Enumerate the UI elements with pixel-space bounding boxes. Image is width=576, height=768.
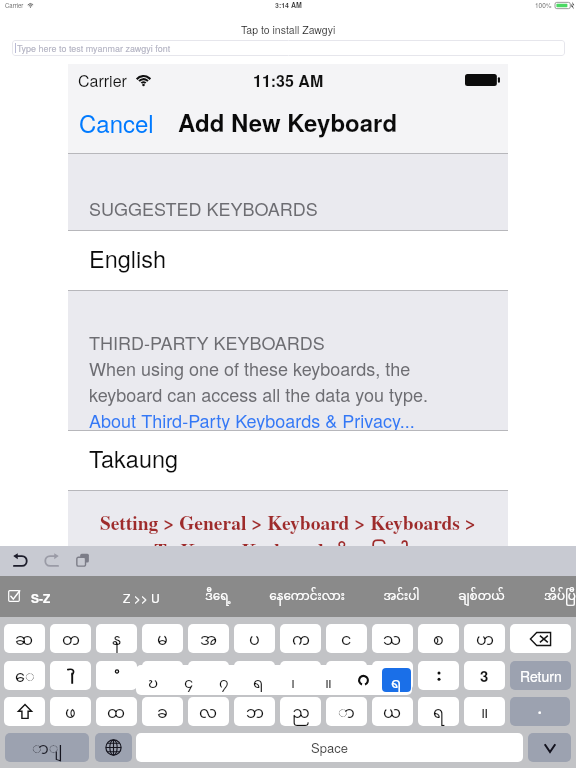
button[interactable]: ဖ xyxy=(50,697,91,726)
staticText: ထ xyxy=(107,697,126,726)
button[interactable]: ဆ xyxy=(4,624,45,653)
staticText: keyboard can access all the data you typ… xyxy=(89,381,429,407)
staticText: ခ xyxy=(157,697,168,726)
staticText: About Third-Party Keyboards & Privacy... xyxy=(89,407,415,433)
button[interactable]: ဎ xyxy=(137,668,170,692)
staticText: Takaung xyxy=(89,441,179,475)
button[interactable] xyxy=(418,661,459,690)
staticText: Cancel xyxy=(79,105,154,139)
staticText: Add New Keyboard xyxy=(178,105,398,139)
staticText: မ xyxy=(157,624,168,653)
button[interactable]: ထ xyxy=(96,697,137,726)
button[interactable]: ည xyxy=(280,697,321,726)
button[interactable]: Paste xyxy=(76,553,90,567)
staticText: ယ xyxy=(383,697,402,726)
button[interactable]: သ xyxy=(372,624,413,653)
button[interactable] xyxy=(372,661,413,690)
button[interactable]: ာျ xyxy=(5,733,89,762)
button[interactable]: ဟ xyxy=(464,624,505,653)
button[interactable]: ရ xyxy=(242,668,275,692)
button[interactable]: အင်းပါ xyxy=(351,576,451,617)
staticText: ဟ xyxy=(476,624,494,653)
staticText: ။ xyxy=(325,668,332,692)
staticText: 100% xyxy=(535,1,552,10)
button[interactable]: လ xyxy=(188,697,229,726)
button[interactable]: Hide keyboard xyxy=(528,733,571,762)
button[interactable]: ချစ်တယ် xyxy=(431,576,531,617)
button[interactable]: ယ xyxy=(372,697,413,726)
button[interactable] xyxy=(347,668,380,692)
button[interactable] xyxy=(188,661,229,690)
button[interactable]: တ xyxy=(50,624,91,653)
button[interactable]: Space xyxy=(136,733,523,762)
button[interactable] xyxy=(96,661,137,690)
button[interactable]: Undo xyxy=(12,553,28,567)
button[interactable]: န xyxy=(96,624,137,653)
button[interactable]: Zawgyi toggle xyxy=(8,590,20,602)
staticText: Space xyxy=(311,738,348,757)
staticText: ၇ xyxy=(219,668,229,692)
button[interactable] xyxy=(326,661,367,690)
button[interactable] xyxy=(234,661,275,690)
button[interactable]: More xyxy=(510,697,570,726)
button[interactable]: ၊ xyxy=(277,668,310,692)
button[interactable]: စ xyxy=(418,624,459,653)
staticText: အ xyxy=(200,624,218,653)
button[interactable]: About Third-Party Keyboards & Privacy... xyxy=(89,407,415,433)
staticText: Return xyxy=(520,666,562,686)
button[interactable]: ဒီရေ့ xyxy=(168,576,268,617)
button[interactable]: င xyxy=(326,624,367,653)
button[interactable]: ။ xyxy=(312,668,345,692)
button[interactable]: Return xyxy=(510,661,571,690)
button[interactable] xyxy=(142,661,183,690)
button[interactable]: အ xyxy=(188,624,229,653)
button[interactable]: ခ xyxy=(142,697,183,726)
staticText: SUGGESTED KEYBOARDS xyxy=(89,195,318,221)
staticText: တ xyxy=(62,624,80,653)
button[interactable]: Switch keyboard xyxy=(95,733,132,762)
staticText: 3:14 AM xyxy=(275,0,302,10)
button[interactable]: 3 xyxy=(464,661,505,690)
staticText: When using one of these keyboards, the xyxy=(89,355,411,381)
staticText: ေ xyxy=(15,661,35,690)
button[interactable]: ရ xyxy=(382,668,411,692)
staticText: သ xyxy=(383,624,402,653)
button[interactable]: ာ xyxy=(326,697,367,726)
button[interactable]: English xyxy=(68,231,508,290)
button[interactable]: Redo xyxy=(44,553,60,567)
button[interactable]: ၇ xyxy=(207,668,240,692)
staticText: Carrier xyxy=(5,1,24,10)
button[interactable]: မ xyxy=(142,624,183,653)
staticText: Z >> U xyxy=(123,589,160,606)
button[interactable]: ပ xyxy=(234,624,275,653)
button[interactable]: အိပ်ပြီ xyxy=(510,576,576,617)
button[interactable]: Backspace xyxy=(510,624,571,653)
button[interactable]: နေကောင်းလား xyxy=(257,576,357,617)
staticText: Type here to test myanmar zawgyi font xyxy=(17,42,171,55)
button[interactable]: Type here to test myanmar zawgyi font xyxy=(12,40,565,56)
button[interactable]: ဘ xyxy=(234,697,275,726)
button[interactable] xyxy=(50,661,91,690)
staticText: ရ xyxy=(433,697,445,726)
staticText: ည xyxy=(292,697,310,726)
button[interactable]: Shift xyxy=(4,697,45,726)
button[interactable]: ၄ xyxy=(172,668,205,692)
staticText: ၄ xyxy=(184,668,194,692)
staticText: လ xyxy=(199,697,218,726)
staticText: ဒီရေ့ xyxy=(205,584,231,610)
button[interactable] xyxy=(280,661,321,690)
staticText: ာ xyxy=(338,697,355,726)
staticText: Setting > General > Keyboard > Keyboards… xyxy=(100,508,476,536)
button[interactable]: ။ xyxy=(464,697,505,726)
button[interactable]: ရ xyxy=(418,697,459,726)
staticText: င xyxy=(341,624,352,653)
staticText: က xyxy=(292,624,310,653)
button[interactable]: က xyxy=(280,624,321,653)
button[interactable]: Cancel xyxy=(68,93,168,150)
button[interactable]: Takaung xyxy=(68,431,508,490)
button[interactable]: ေ xyxy=(4,661,45,690)
staticText: • xyxy=(538,705,542,719)
staticText: ဖ xyxy=(65,697,76,726)
staticText: Tap to install Zawgyi xyxy=(241,22,336,37)
staticText: အင်းပါ xyxy=(383,584,420,610)
